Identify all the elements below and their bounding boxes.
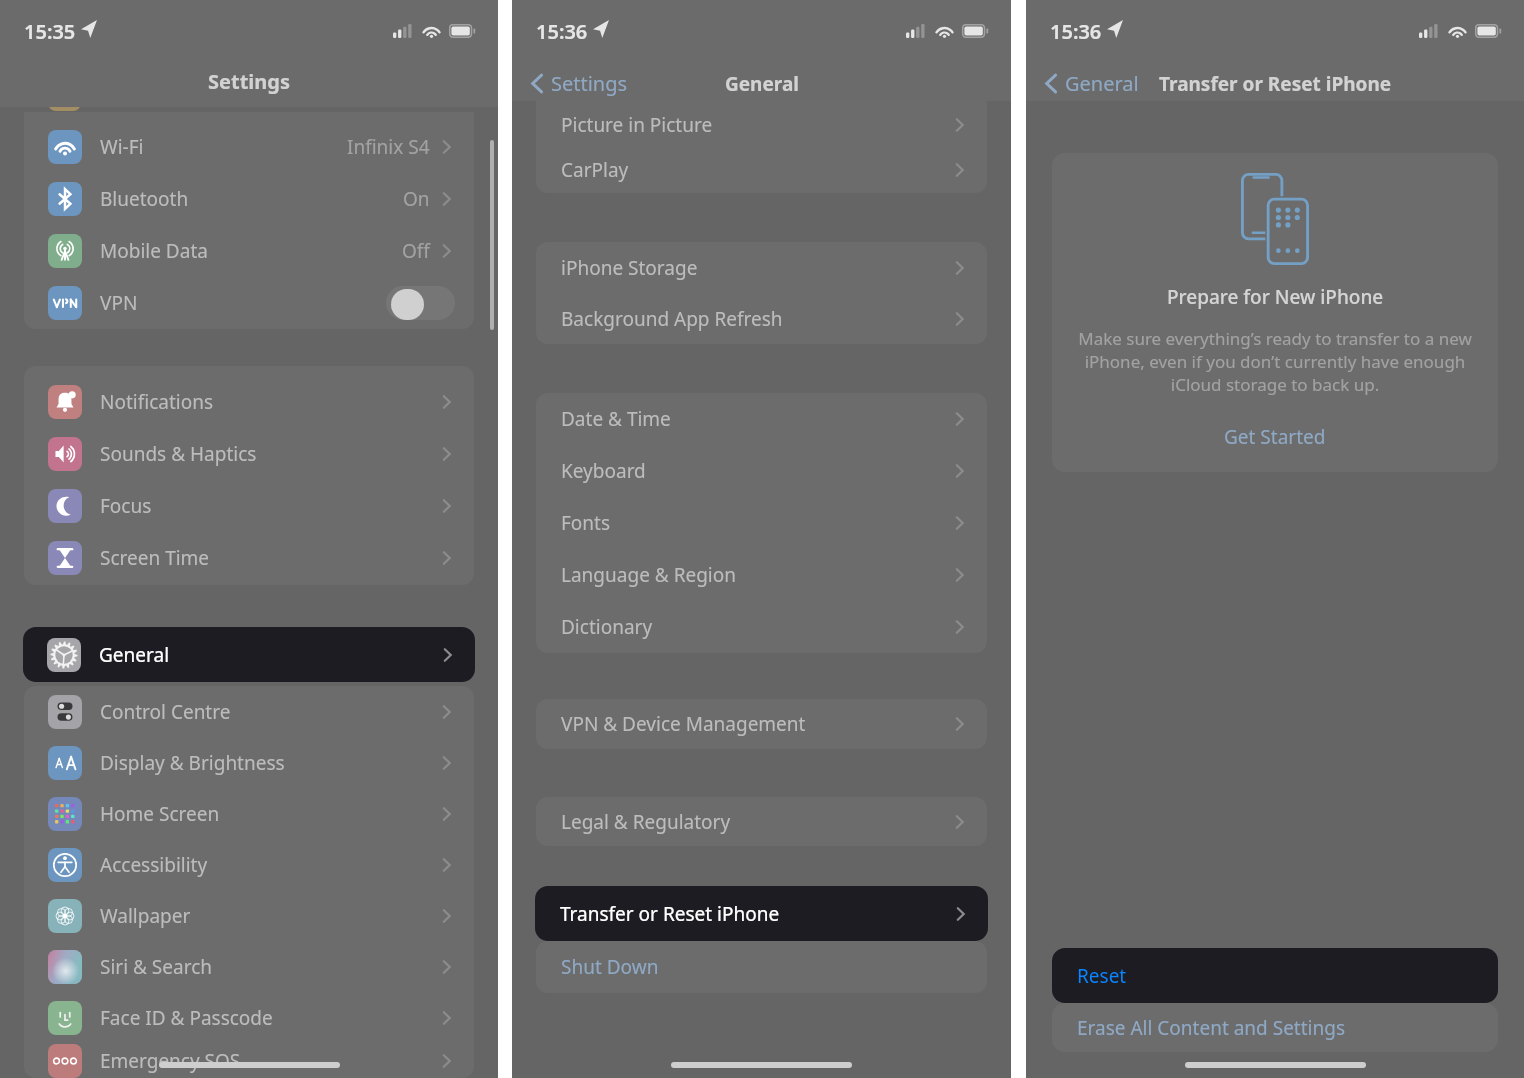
staticText: VPN & Device Management bbox=[561, 711, 806, 737]
staticText: Date & Time bbox=[561, 406, 671, 432]
staticText: Control Centre bbox=[100, 699, 231, 725]
staticText: 15:36 bbox=[536, 18, 588, 45]
button[interactable]: Wallpaper bbox=[24, 890, 474, 941]
staticText: Erase All Content and Settings bbox=[1077, 1015, 1346, 1041]
staticText: Dictionary bbox=[561, 614, 653, 640]
button[interactable]: Toggle VPN bbox=[386, 286, 455, 320]
staticText: Infinix S4 bbox=[347, 134, 430, 160]
button[interactable]: Control Centre bbox=[24, 686, 474, 737]
button[interactable]: Siri & Search bbox=[24, 941, 474, 992]
staticText: Settings bbox=[208, 68, 290, 95]
staticText: CarPlay bbox=[561, 157, 629, 183]
staticText: Emergency SOS bbox=[100, 1048, 241, 1074]
button[interactable]: Transfer or Reset iPhone bbox=[535, 886, 988, 941]
button[interactable]: Shut Down bbox=[536, 941, 987, 993]
staticText: Display & Brightness bbox=[100, 750, 285, 776]
staticText: Notifications bbox=[100, 389, 214, 415]
staticText: Settings bbox=[551, 70, 628, 97]
button[interactable]: Accessibility bbox=[24, 839, 474, 890]
button[interactable]: Screen Time bbox=[24, 532, 474, 584]
staticText: Fonts bbox=[561, 510, 611, 536]
staticText: Bluetooth bbox=[100, 186, 189, 212]
staticText: Focus bbox=[100, 493, 152, 519]
staticText: iPhone Storage bbox=[561, 255, 698, 281]
button[interactable]: Mobile Data bbox=[24, 225, 474, 277]
staticText: On bbox=[403, 186, 430, 212]
button[interactable]: Dictionary bbox=[536, 601, 987, 653]
staticText: Wi-Fi bbox=[100, 134, 144, 160]
staticText: Face ID & Passcode bbox=[100, 1005, 273, 1031]
staticText: Background App Refresh bbox=[561, 306, 783, 332]
staticText: Screen Time bbox=[100, 545, 210, 571]
staticText: Mobile Data bbox=[100, 238, 208, 264]
button[interactable]: Back to Settings bbox=[531, 70, 628, 97]
staticText: General bbox=[725, 71, 799, 97]
staticText: Transfer or Reset iPhone bbox=[1159, 71, 1392, 97]
staticText: Off bbox=[402, 238, 430, 264]
button[interactable]: CarPlay bbox=[536, 147, 987, 193]
button[interactable]: VPN bbox=[24, 277, 474, 329]
staticText: Home Screen bbox=[100, 801, 220, 827]
button[interactable]: Wi-Fi bbox=[24, 121, 474, 173]
staticText: Accessibility bbox=[100, 852, 208, 878]
button[interactable]: Language & Region bbox=[536, 549, 987, 601]
staticText: VPN bbox=[100, 290, 138, 316]
button[interactable]: Notifications bbox=[24, 376, 474, 428]
button[interactable]: Get Started bbox=[1224, 424, 1326, 450]
staticText: Wallpaper bbox=[100, 903, 191, 929]
button[interactable]: Legal & Regulatory bbox=[536, 797, 987, 846]
button[interactable]: Display & Brightness bbox=[24, 737, 474, 788]
button[interactable]: Reset bbox=[1052, 948, 1498, 1003]
staticText: Language & Region bbox=[561, 562, 736, 588]
button[interactable]: Home Screen bbox=[24, 788, 474, 839]
button[interactable]: Keyboard bbox=[536, 445, 987, 497]
staticText: Sounds & Haptics bbox=[100, 441, 257, 467]
staticText: Siri & Search bbox=[100, 954, 213, 980]
button[interactable]: General bbox=[23, 627, 475, 682]
staticText: Prepare for New iPhone bbox=[1167, 284, 1384, 310]
button[interactable]: iPhone Storage bbox=[536, 242, 987, 293]
button[interactable]: VPN & Device Management bbox=[536, 699, 987, 749]
staticText: General bbox=[1065, 70, 1139, 97]
button[interactable]: Sounds & Haptics bbox=[24, 428, 474, 480]
staticText: Transfer or Reset iPhone bbox=[560, 901, 780, 927]
button[interactable]: Bluetooth bbox=[24, 173, 474, 225]
button[interactable]: Background App Refresh bbox=[536, 293, 987, 344]
button[interactable]: Picture in Picture bbox=[536, 102, 987, 147]
staticText: 15:35 bbox=[24, 18, 76, 45]
button[interactable]: Date & Time bbox=[536, 393, 987, 445]
staticText: Shut Down bbox=[561, 954, 659, 980]
button[interactable]: Focus bbox=[24, 480, 474, 532]
staticText: Reset bbox=[1077, 963, 1127, 989]
staticText: Legal & Regulatory bbox=[561, 809, 731, 835]
button[interactable]: Erase All Content and Settings bbox=[1052, 1003, 1498, 1052]
staticText: Picture in Picture bbox=[561, 112, 713, 138]
button[interactable]: Face ID & Passcode bbox=[24, 992, 474, 1043]
staticText: 15:36 bbox=[1050, 18, 1102, 45]
staticText: Make sure everything’s ready to transfer… bbox=[1060, 327, 1490, 396]
button[interactable]: Back to General bbox=[1045, 70, 1139, 97]
button[interactable]: Emergency SOS bbox=[24, 1043, 474, 1078]
staticText: Keyboard bbox=[561, 458, 646, 484]
staticText: General bbox=[99, 642, 170, 668]
staticText: Get Started bbox=[1224, 424, 1326, 450]
button[interactable]: Fonts bbox=[536, 497, 987, 549]
